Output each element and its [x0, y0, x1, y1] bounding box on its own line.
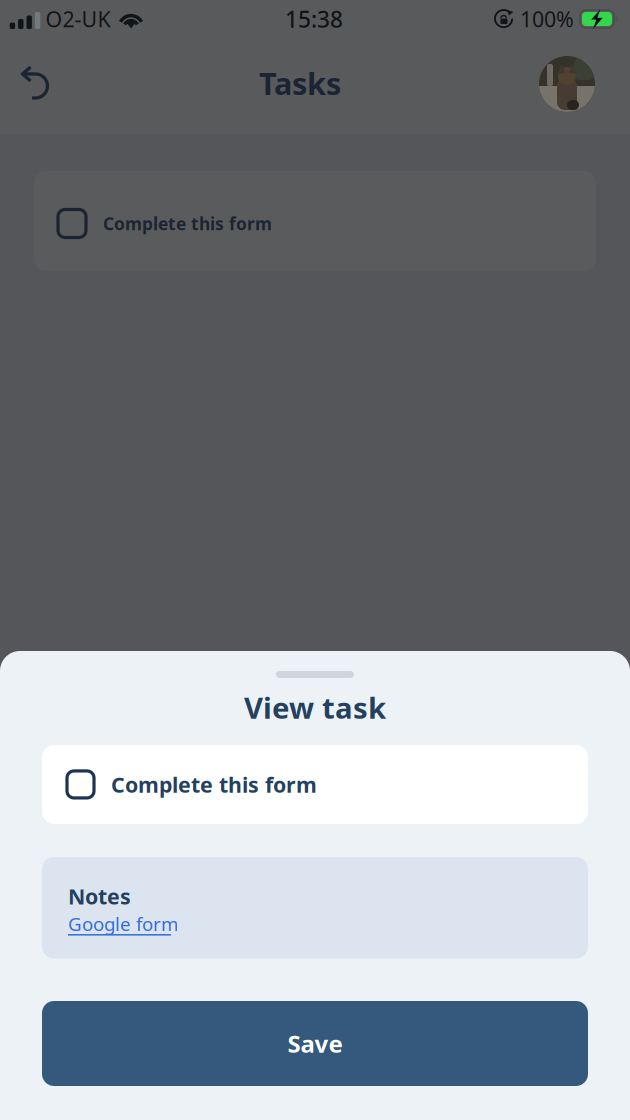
button[interactable]: Profile	[539, 56, 595, 112]
staticText: Complete this form	[103, 212, 272, 235]
button[interactable]: Complete this form	[42, 745, 588, 824]
staticText: O2-UK	[45, 5, 110, 33]
button[interactable]: Back	[7, 55, 65, 113]
staticText: 15:38	[285, 4, 343, 34]
staticText: 100%	[520, 5, 574, 33]
staticText: View task	[244, 688, 386, 727]
button[interactable]: Save	[42, 1001, 588, 1086]
staticText: Notes	[68, 882, 131, 910]
staticText: Google form	[68, 911, 178, 936]
staticText: Complete this form	[111, 770, 317, 799]
button[interactable]: Google form	[68, 911, 178, 938]
staticText: Save	[287, 1028, 342, 1059]
staticText: Tasks	[259, 63, 341, 103]
